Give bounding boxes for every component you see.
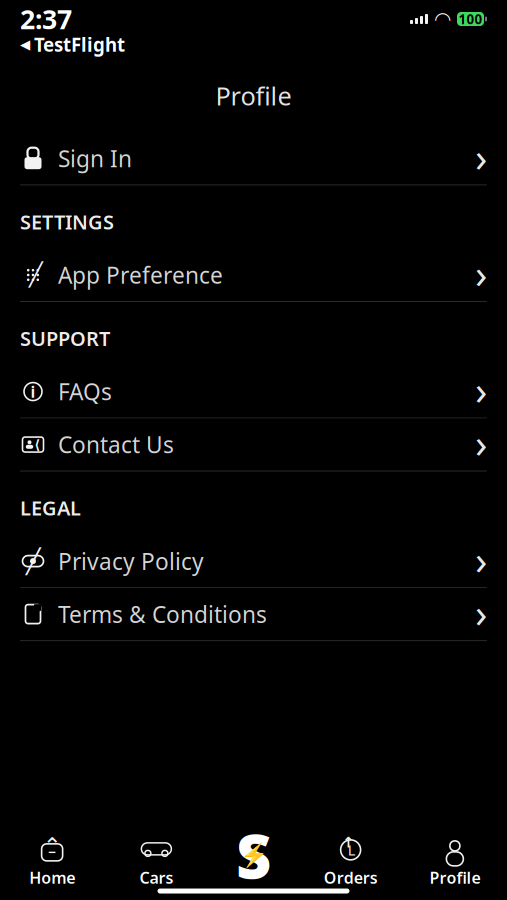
- staticText: Privacy Policy: [58, 546, 204, 576]
- staticText: 100: [458, 10, 482, 28]
- button[interactable]: ╱: [0, 249, 507, 301]
- staticText: Cars: [139, 867, 173, 888]
- staticText: ╱: [29, 262, 43, 287]
- staticText: L: [348, 840, 356, 860]
- staticText: 2:37: [20, 1, 72, 37]
- button[interactable]: i: [0, 366, 507, 418]
- staticText: ⟨: [34, 437, 40, 452]
- button[interactable]: Profile: [403, 828, 507, 894]
- staticText: i: [30, 381, 35, 402]
- staticText: Sign In: [58, 143, 132, 173]
- staticText: App Preference: [58, 260, 223, 290]
- staticText: ↑: [342, 834, 354, 851]
- button[interactable]: ⌃: [0, 828, 104, 894]
- staticText: Home: [29, 867, 75, 888]
- staticText: Orders: [324, 867, 378, 888]
- staticText: Profile: [429, 867, 480, 888]
- button[interactable]: Sign In: [0, 132, 507, 184]
- staticText: ›: [475, 416, 487, 469]
- staticText: ⌃: [43, 833, 62, 859]
- button[interactable]: ⟨: [0, 419, 507, 471]
- staticText: ›: [475, 586, 487, 639]
- staticText: Terms & Conditions: [58, 599, 267, 629]
- staticText: Profile: [215, 79, 291, 112]
- staticText: LEGAL: [20, 495, 81, 521]
- staticText: S: [236, 814, 271, 896]
- button[interactable]: L: [298, 828, 403, 894]
- staticText: ╱: [26, 547, 40, 575]
- button[interactable]: Charge: [225, 829, 281, 893]
- staticText: FAQs: [58, 376, 112, 407]
- staticText: SUPPORT: [20, 325, 110, 352]
- staticText: Contact Us: [58, 429, 174, 460]
- staticText: ›: [475, 533, 487, 586]
- staticText: ◀: [20, 37, 30, 52]
- button[interactable]: Cars: [104, 828, 208, 894]
- staticText: ◠: [435, 8, 450, 30]
- button[interactable]: Terms & Conditions: [0, 588, 507, 640]
- staticText: ›: [475, 363, 487, 416]
- staticText: SETTINGS: [20, 208, 114, 235]
- staticText: ⚡: [239, 842, 267, 868]
- staticText: ›: [475, 130, 487, 183]
- button[interactable]: ╱: [0, 535, 507, 587]
- staticText: ›: [475, 246, 487, 299]
- staticText: TestFlight: [34, 32, 125, 57]
